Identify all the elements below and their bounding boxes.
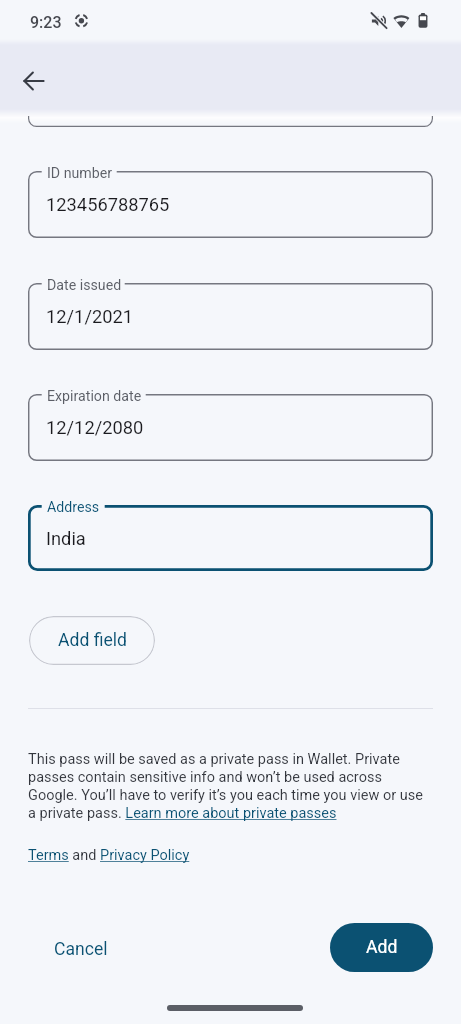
staticText: Add	[366, 937, 398, 958]
staticText: Terms and Privacy Policy	[28, 847, 190, 864]
button[interactable]: Back	[10, 57, 58, 105]
staticText: This pass will be saved as a private pas…	[28, 751, 434, 822]
staticText: Date issued	[47, 277, 122, 294]
staticText: 9:23	[30, 13, 62, 32]
staticText: 123456788765	[46, 194, 170, 215]
staticText: Address	[47, 499, 100, 516]
button[interactable]: Cancel	[38, 933, 124, 966]
staticText: Expiration date	[47, 388, 142, 405]
button[interactable]	[28, 505, 433, 571]
button[interactable]	[28, 394, 433, 461]
button[interactable]: Add field	[29, 616, 155, 665]
staticText: India	[46, 528, 86, 549]
staticText: ID number	[47, 165, 113, 182]
button[interactable]: Add	[330, 923, 433, 972]
staticText: Add field	[58, 630, 127, 651]
button[interactable]	[28, 283, 433, 350]
staticText: 12/1/2021	[46, 306, 134, 327]
button[interactable]: Terms and Privacy Policy	[28, 847, 190, 864]
staticText: Cancel	[54, 939, 108, 960]
staticText: 12/12/2080	[46, 417, 144, 438]
button[interactable]	[28, 171, 433, 238]
